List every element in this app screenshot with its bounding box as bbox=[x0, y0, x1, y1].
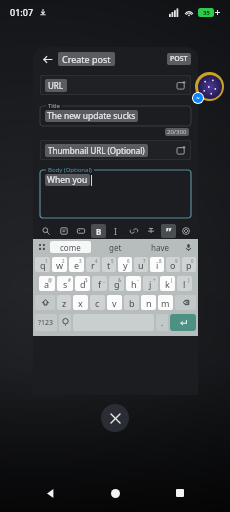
staticText: s bbox=[63, 278, 68, 290]
button[interactable]: Thumbnail URL (Optional) bbox=[40, 140, 191, 160]
button[interactable]: Back bbox=[35, 478, 65, 508]
button[interactable]: strike bbox=[143, 224, 158, 238]
button[interactable]: h bbox=[126, 276, 141, 291]
button[interactable]: l bbox=[177, 276, 192, 291]
staticText: 3 bbox=[79, 258, 82, 264]
button[interactable]: c bbox=[90, 295, 105, 310]
staticText: & bbox=[118, 277, 122, 283]
staticText: When you bbox=[47, 174, 88, 186]
button[interactable]: B bbox=[91, 224, 106, 238]
button[interactable]: I bbox=[108, 224, 123, 238]
staticText: 01:07 bbox=[10, 6, 34, 18]
button[interactable]: POST bbox=[170, 54, 188, 64]
staticText: Create post bbox=[62, 53, 111, 65]
staticText: e bbox=[74, 259, 80, 271]
button[interactable]: f bbox=[92, 276, 107, 291]
staticText: j bbox=[149, 278, 152, 290]
staticText: 0 bbox=[191, 258, 194, 264]
button[interactable]: u bbox=[134, 257, 148, 272]
button[interactable]: get bbox=[95, 241, 136, 253]
staticText: 6 bbox=[127, 258, 130, 264]
staticText: ( bbox=[171, 277, 173, 283]
staticText: o bbox=[170, 259, 176, 271]
button[interactable]: more bbox=[178, 224, 193, 238]
button[interactable]: p bbox=[182, 257, 196, 272]
button[interactable]: Home bbox=[100, 478, 130, 508]
button[interactable]: j bbox=[143, 276, 158, 291]
staticText: k bbox=[165, 278, 170, 290]
staticText: ?123 bbox=[38, 318, 54, 328]
button[interactable]: o bbox=[166, 257, 180, 272]
button[interactable]: b bbox=[124, 295, 139, 310]
staticText: have bbox=[151, 242, 170, 253]
button[interactable]: link bbox=[126, 224, 141, 238]
button[interactable]: m bbox=[158, 295, 173, 310]
button[interactable]: Enter bbox=[170, 314, 196, 331]
button[interactable]: y bbox=[118, 257, 132, 272]
staticText: The new update sucks bbox=[47, 110, 136, 122]
button[interactable]: w bbox=[52, 257, 67, 272]
button[interactable]: Keyboard menu bbox=[37, 242, 48, 253]
button[interactable]: ?123 bbox=[35, 314, 57, 331]
button[interactable]: x bbox=[73, 295, 88, 310]
staticText: 7 bbox=[143, 258, 146, 264]
button[interactable]: Backspace bbox=[175, 295, 196, 310]
staticText: z bbox=[62, 297, 67, 309]
button[interactable]: Create post bbox=[62, 53, 111, 65]
button[interactable]: Chat head bbox=[192, 72, 224, 104]
staticText: f bbox=[98, 278, 102, 290]
button[interactable]: Close bbox=[101, 404, 129, 432]
button[interactable]: e bbox=[69, 257, 84, 272]
staticText: y bbox=[123, 259, 128, 271]
staticText: i bbox=[156, 259, 159, 271]
staticText: m bbox=[161, 297, 170, 309]
staticText: 2 bbox=[62, 258, 65, 264]
button[interactable]: . bbox=[156, 314, 168, 331]
button[interactable]: d bbox=[75, 276, 90, 291]
button[interactable]: come bbox=[50, 241, 91, 253]
button[interactable]: q bbox=[35, 257, 50, 272]
staticText: 1 bbox=[45, 258, 48, 264]
staticText: b bbox=[129, 297, 135, 309]
staticText: ) bbox=[188, 277, 190, 283]
staticText: h bbox=[131, 278, 137, 290]
button[interactable]: t bbox=[102, 257, 116, 272]
staticText: g bbox=[114, 278, 120, 290]
staticText: l bbox=[183, 278, 186, 290]
button[interactable]: Voice input bbox=[183, 242, 194, 253]
button[interactable]: img bbox=[73, 224, 88, 238]
staticText: @ bbox=[48, 277, 53, 283]
staticText: POST bbox=[170, 54, 188, 64]
staticText: 5 bbox=[111, 258, 114, 264]
button[interactable]: i bbox=[150, 257, 164, 272]
button[interactable]: quote bbox=[161, 224, 176, 238]
staticText: v bbox=[112, 297, 117, 309]
button[interactable]: r bbox=[86, 257, 100, 272]
button[interactable]: k bbox=[160, 276, 175, 291]
button[interactable]: v bbox=[107, 295, 122, 310]
button[interactable]: have bbox=[140, 241, 181, 253]
staticText: - bbox=[137, 277, 139, 283]
staticText: $ bbox=[85, 277, 88, 283]
button[interactable]: Recent apps bbox=[165, 478, 195, 508]
button[interactable]: note bbox=[56, 224, 71, 238]
button[interactable]: Back bbox=[40, 52, 55, 67]
button[interactable]: Emoji bbox=[59, 314, 71, 331]
button[interactable]: a bbox=[39, 276, 55, 291]
staticText: 8 bbox=[159, 258, 162, 264]
button[interactable]: n bbox=[141, 295, 156, 310]
staticText: a bbox=[44, 278, 50, 290]
staticText: 35 bbox=[203, 9, 210, 17]
staticText: 4 bbox=[95, 258, 98, 264]
button[interactable]: z bbox=[57, 295, 71, 310]
button[interactable]: s bbox=[57, 276, 73, 291]
button[interactable]: Shift bbox=[35, 295, 55, 310]
button[interactable]: g bbox=[109, 276, 124, 291]
button[interactable]: URL bbox=[40, 75, 191, 95]
staticText: URL bbox=[48, 80, 64, 91]
staticText: d bbox=[80, 278, 86, 290]
staticText: get bbox=[109, 242, 122, 253]
button[interactable]: search bbox=[38, 224, 53, 238]
staticText: I bbox=[114, 226, 117, 237]
